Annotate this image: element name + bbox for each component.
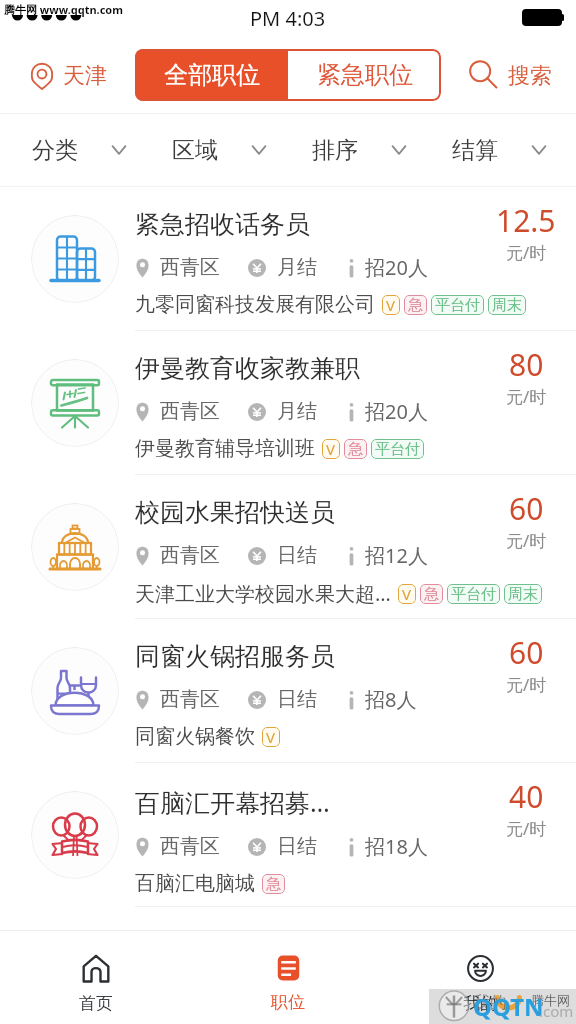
button[interactable]: 首页 — [0, 931, 192, 1024]
button[interactable]: 百脑汇开幕招募… — [0, 763, 576, 907]
staticText: 西青区 — [160, 834, 220, 859]
staticText: 平台付 — [375, 440, 420, 459]
staticText: .com — [539, 1001, 574, 1021]
staticText: 元/时 — [506, 385, 547, 408]
staticText: 职位 — [271, 992, 305, 1013]
staticText: QQTN — [473, 990, 544, 1023]
staticText: 12.5 — [496, 200, 556, 241]
staticText: 同窗火锅招服务员 — [135, 641, 335, 672]
button[interactable]: 搜索 — [469, 61, 552, 90]
staticText: 60 — [509, 632, 544, 673]
staticText: 西青区 — [160, 543, 220, 568]
staticText: 全部职位 — [164, 60, 260, 90]
staticText: 平台付 — [435, 296, 480, 315]
staticText: 月结 — [277, 399, 317, 424]
staticText: 日结 — [277, 834, 317, 859]
button[interactable]: 紧急职位 — [288, 49, 441, 101]
staticText: 周末 — [492, 296, 522, 315]
staticText: 招18人 — [365, 833, 428, 860]
staticText: 元/时 — [506, 529, 547, 552]
staticText: 天津 — [63, 62, 107, 90]
staticText: 我的 — [463, 993, 497, 1014]
staticText: 同窗火锅餐饮 — [135, 724, 255, 749]
staticText: 伊曼教育辅导培训班 — [135, 436, 315, 461]
staticText: 百脑汇开幕招募… — [135, 785, 330, 819]
staticText: 校园水果招快送员 — [135, 497, 335, 528]
button[interactable]: 同窗火锅招服务员 — [0, 619, 576, 763]
staticText: 紧急招收话务员 — [135, 209, 310, 240]
staticText: 元/时 — [506, 241, 547, 264]
staticText: 我的 — [473, 992, 507, 1013]
staticText: 日结 — [277, 687, 317, 712]
staticText: V — [402, 584, 412, 604]
staticText: 西青区 — [160, 399, 220, 424]
button[interactable]: 职位 — [192, 931, 384, 1024]
button[interactable]: 分类 — [0, 114, 140, 186]
button[interactable]: 我的 — [384, 931, 576, 1024]
staticText: 结算 — [452, 136, 498, 165]
staticText: 60 — [509, 488, 544, 529]
staticText: 排序 — [312, 136, 358, 165]
button[interactable]: 全部职位 — [135, 49, 288, 101]
button[interactable]: 排序 — [280, 114, 420, 186]
button[interactable]: 校园水果招快送员 — [0, 475, 576, 619]
staticText: 急 — [348, 440, 363, 459]
staticText: 日结 — [277, 543, 317, 568]
staticText: 元/时 — [506, 673, 547, 696]
staticText: 区域 — [172, 136, 218, 165]
staticText: 招20人 — [365, 254, 428, 281]
staticText: 伊曼教育收家教兼职 — [135, 353, 360, 384]
staticText: 周末 — [508, 585, 538, 604]
staticText: V — [326, 439, 336, 459]
staticText: 急 — [408, 296, 423, 315]
staticText: 分类 — [32, 136, 78, 165]
staticText: 西青区 — [160, 687, 220, 712]
staticText: 平台付 — [451, 585, 496, 604]
staticText: 招12人 — [365, 542, 428, 569]
button[interactable]: 伊曼教育收家教兼职 — [0, 331, 576, 475]
staticText: 元/时 — [506, 817, 547, 840]
staticText: V — [386, 295, 396, 315]
button[interactable]: 结算 — [420, 114, 560, 186]
staticText: 九零同窗科技发展有限公司 — [135, 292, 375, 317]
staticText: 急 — [266, 875, 281, 894]
staticText: 月结 — [277, 255, 317, 280]
staticText: 腾牛网 — [531, 992, 570, 1008]
staticText: 搜索 — [508, 62, 552, 90]
button[interactable]: 天津 — [31, 62, 107, 90]
staticText: V — [266, 727, 276, 747]
staticText: 急 — [424, 585, 439, 604]
staticText: 西青区 — [160, 255, 220, 280]
staticText: PM 4:03 — [250, 5, 326, 32]
staticText: 招20人 — [365, 398, 428, 425]
staticText: 首页 — [79, 993, 113, 1014]
button[interactable]: 紧急招收话务员 — [0, 187, 576, 331]
staticText: 天津工业大学校园水果大超… — [135, 580, 391, 607]
staticText: 40 — [509, 776, 544, 817]
staticText: 腾牛网 www.qqtn.com — [4, 2, 123, 17]
staticText: 80 — [509, 344, 544, 385]
staticText: 百脑汇电脑城 — [135, 871, 255, 896]
button[interactable]: 区域 — [140, 114, 280, 186]
staticText: 紧急职位 — [317, 60, 413, 90]
staticText: 招8人 — [365, 686, 417, 713]
